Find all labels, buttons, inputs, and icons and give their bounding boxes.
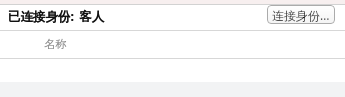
staticText: 名称 xyxy=(44,37,67,51)
staticText: 连接身份… xyxy=(272,7,330,23)
staticText: 已连接身份: 客人 xyxy=(8,8,105,25)
staticText: 已连接身份: 客人 xyxy=(8,8,105,25)
button[interactable]: 连接身份… xyxy=(267,5,335,24)
button[interactable]: 名称 xyxy=(0,31,345,58)
